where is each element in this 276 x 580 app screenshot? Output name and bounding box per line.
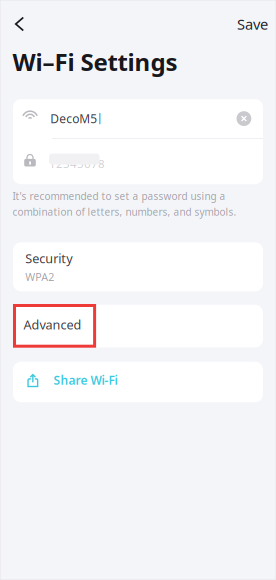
staticText: It's recommended to set a password using… [13, 189, 226, 203]
staticText: Wi–Fi Settings [13, 45, 178, 78]
button[interactable]: Advanced [13, 305, 263, 347]
staticText: Share Wi-Fi [53, 372, 117, 388]
staticText: 12345678 [49, 156, 105, 171]
staticText: Advanced [23, 316, 81, 333]
staticText: Save [237, 14, 268, 34]
staticText: WPA2 [25, 270, 54, 284]
button[interactable]: Security [13, 242, 263, 291]
staticText: DecoM5 [50, 110, 97, 127]
button[interactable]: Back [4, 6, 34, 42]
button[interactable]: Share Wi-Fi [13, 362, 263, 402]
staticText: combination of letters, numbers, and sym… [13, 205, 237, 219]
button[interactable]: Save [229, 6, 276, 42]
staticText: Security [25, 250, 72, 267]
